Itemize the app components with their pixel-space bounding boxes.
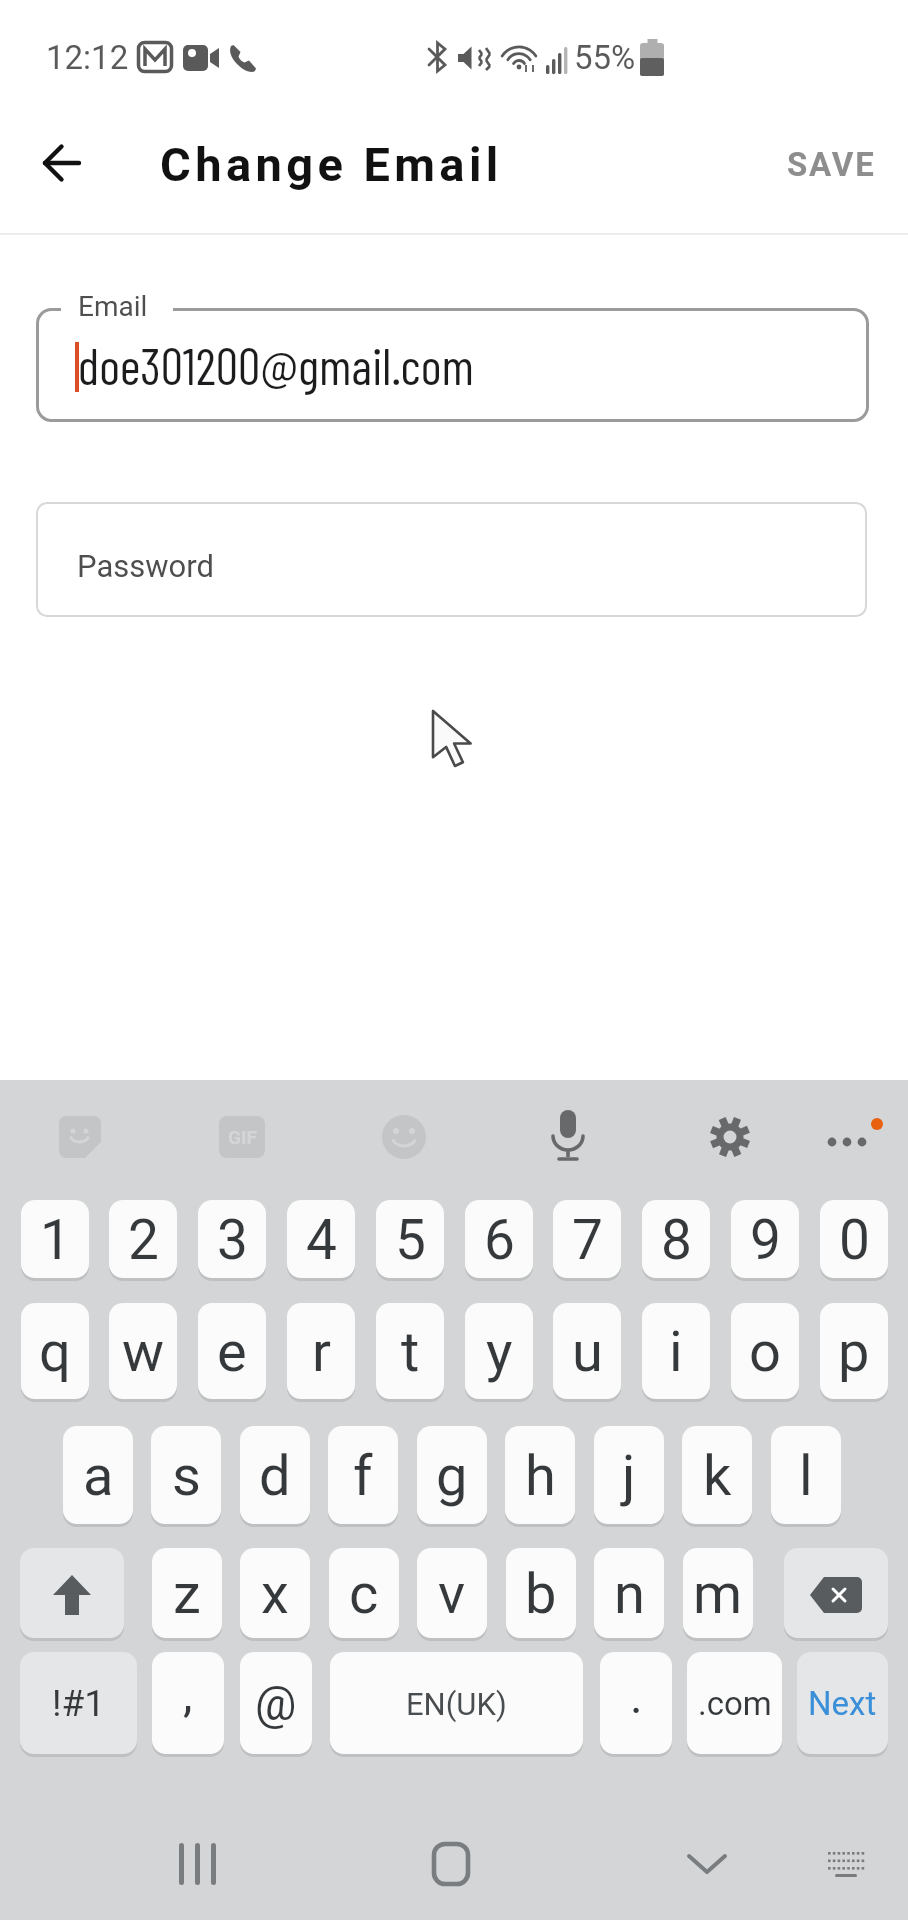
staticText: 9 — [750, 1208, 781, 1272]
button[interactable]: EN(UK) — [330, 1652, 583, 1757]
button[interactable]: g — [417, 1426, 487, 1527]
staticText: c — [349, 1561, 379, 1627]
staticText: o — [749, 1319, 781, 1385]
staticText: f — [353, 1443, 373, 1509]
staticText: t — [401, 1319, 420, 1385]
button[interactable] — [784, 1548, 888, 1641]
staticText: n — [614, 1561, 645, 1627]
button[interactable]: GIF — [207, 1102, 277, 1172]
button[interactable]: l — [771, 1426, 841, 1527]
button[interactable]: , — [152, 1652, 224, 1757]
button[interactable] — [533, 1098, 603, 1174]
staticText: h — [525, 1443, 556, 1509]
button[interactable] — [812, 1102, 892, 1172]
button[interactable]: z — [152, 1548, 222, 1641]
button[interactable]: b — [506, 1548, 576, 1641]
button[interactable]: s — [151, 1426, 221, 1527]
staticText: GIF — [228, 1126, 257, 1148]
staticText: Email — [78, 290, 148, 323]
button[interactable]: !#1 — [20, 1652, 137, 1757]
button[interactable]: Password — [36, 502, 867, 617]
button[interactable]: t — [376, 1303, 444, 1402]
button[interactable]: 9 — [731, 1200, 799, 1281]
staticText: 4 — [306, 1208, 337, 1272]
button[interactable] — [695, 1102, 765, 1172]
button[interactable]: 7 — [553, 1200, 621, 1281]
button[interactable] — [36, 308, 869, 422]
button[interactable]: r — [287, 1303, 355, 1402]
button[interactable]: @ — [240, 1652, 312, 1757]
button[interactable]: o — [731, 1303, 799, 1402]
staticText: d — [259, 1443, 291, 1509]
button[interactable]: SAVE — [766, 134, 876, 194]
button[interactable] — [369, 1102, 439, 1172]
staticText: r — [312, 1319, 331, 1385]
button[interactable]: h — [505, 1426, 575, 1527]
button[interactable]: m — [683, 1548, 753, 1641]
button[interactable]: y — [465, 1303, 533, 1402]
staticText: w — [122, 1319, 165, 1385]
button[interactable]: n — [594, 1548, 664, 1641]
button[interactable]: x — [240, 1548, 310, 1641]
staticText: 3 — [217, 1208, 248, 1272]
button[interactable]: f — [328, 1426, 398, 1527]
staticText: .com — [698, 1684, 772, 1723]
staticText: m — [693, 1561, 743, 1627]
button[interactable]: 3 — [198, 1200, 266, 1281]
button[interactable]: e — [198, 1303, 266, 1402]
staticText: l — [799, 1443, 813, 1509]
button[interactable]: 4 — [287, 1200, 355, 1281]
button[interactable] — [816, 1834, 876, 1894]
button[interactable]: k — [682, 1426, 752, 1527]
staticText: u — [572, 1319, 603, 1385]
button[interactable]: c — [329, 1548, 399, 1641]
button[interactable]: u — [553, 1303, 621, 1402]
staticText: 12:12 — [46, 38, 129, 77]
button[interactable]: .com — [687, 1652, 782, 1757]
staticText: 8 — [661, 1208, 692, 1272]
button[interactable]: d — [240, 1426, 310, 1527]
button[interactable] — [28, 129, 96, 197]
staticText: 5 — [395, 1208, 426, 1272]
staticText: Next — [808, 1684, 877, 1723]
staticText: k — [703, 1443, 732, 1509]
button[interactable] — [411, 1824, 491, 1904]
staticText: 2 — [128, 1208, 159, 1272]
button[interactable]: 0 — [820, 1200, 888, 1281]
button[interactable]: 8 — [642, 1200, 710, 1281]
button[interactable] — [667, 1824, 747, 1904]
staticText: z — [173, 1561, 201, 1627]
staticText: 55% — [574, 38, 636, 77]
staticText: 6 — [484, 1208, 515, 1272]
staticText: s — [172, 1443, 201, 1509]
button[interactable]: v — [417, 1548, 487, 1641]
staticText: , — [183, 1666, 193, 1722]
button[interactable]: q — [21, 1303, 89, 1402]
staticText: SAVE — [787, 145, 876, 184]
staticText: g — [436, 1443, 468, 1509]
button[interactable]: w — [109, 1303, 177, 1402]
staticText: y — [486, 1319, 513, 1385]
button[interactable] — [157, 1824, 237, 1904]
staticText: @ — [255, 1677, 297, 1731]
staticText: 0 — [839, 1208, 870, 1272]
button[interactable]: a — [63, 1426, 133, 1527]
button[interactable]: 1 — [21, 1200, 89, 1281]
button[interactable] — [45, 1102, 115, 1172]
button[interactable]: j — [594, 1426, 664, 1527]
staticText: !#1 — [52, 1682, 106, 1725]
button[interactable]: p — [820, 1303, 888, 1402]
button[interactable]: i — [642, 1303, 710, 1402]
staticText: 7 — [572, 1208, 603, 1272]
button[interactable]: 2 — [109, 1200, 177, 1281]
staticText: j — [622, 1443, 636, 1509]
button[interactable]: Next — [797, 1652, 888, 1757]
button[interactable]: 5 — [376, 1200, 444, 1281]
button[interactable]: . — [600, 1652, 672, 1757]
button[interactable]: 6 — [465, 1200, 533, 1281]
staticText: e — [217, 1319, 247, 1385]
staticText: x — [261, 1561, 289, 1627]
staticText: a — [83, 1443, 114, 1509]
button[interactable] — [20, 1548, 124, 1641]
staticText: 1 — [40, 1208, 71, 1272]
